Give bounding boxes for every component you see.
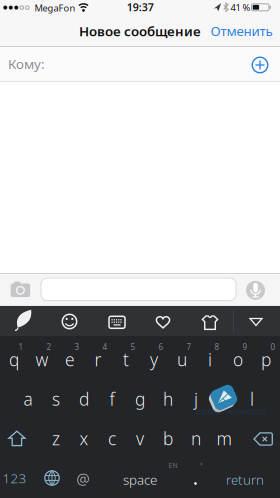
button[interactable]: y [140,340,168,379]
staticText: j [194,387,198,410]
staticText: h [163,387,173,410]
staticText: 4 [102,342,107,352]
staticText: q [9,348,19,371]
staticText: k [219,387,228,410]
button[interactable]: t [112,340,140,379]
staticText: o [233,348,243,371]
staticText: 41 % [231,1,251,14]
button[interactable]: s [42,379,70,418]
button[interactable] [242,307,270,335]
staticText: c [108,427,116,450]
staticText: 8 [214,342,219,352]
button[interactable] [248,420,278,458]
button[interactable]: Отменить [199,18,280,44]
button[interactable]: j [182,379,210,418]
button[interactable] [196,308,224,336]
staticText: space [123,471,157,488]
staticText: b [163,427,173,450]
staticText: l [250,387,254,410]
staticText: a [23,387,32,410]
button[interactable]: x [70,419,98,458]
button[interactable]: w [28,340,56,379]
staticText: p [261,348,271,371]
button[interactable]: return [219,460,271,498]
staticText: g [135,387,145,410]
staticText: w [35,348,48,371]
button[interactable] [183,468,207,498]
button[interactable] [41,278,236,301]
staticText: v [136,427,144,450]
staticText: 6 [158,342,163,352]
button[interactable]: o [224,340,252,379]
staticText: 2 [46,342,51,352]
button[interactable] [243,278,268,303]
staticText: 3 [74,342,79,352]
staticText: 123 [2,469,26,487]
button[interactable]: l [238,379,266,418]
staticText: Отменить [210,22,272,40]
staticText: 5 [130,342,135,352]
button[interactable] [55,307,83,335]
staticText: n [191,427,201,450]
staticText: z [52,427,60,450]
staticText: s [52,387,60,410]
button[interactable] [38,464,66,492]
button[interactable]: q [0,340,28,379]
staticText: d [79,387,89,410]
staticText: r [94,348,101,371]
button[interactable]: h [154,379,182,418]
button[interactable]: z [42,419,70,458]
button[interactable]: e [56,340,84,379]
button[interactable]: v [126,419,154,458]
staticText: x [79,427,88,450]
button[interactable] [103,308,131,336]
button[interactable]: a [14,379,42,418]
staticText: Новое сообщение [79,22,201,40]
staticText: y [150,348,158,371]
button[interactable]: c [98,419,126,458]
button[interactable] [149,308,177,336]
staticText: 9 [242,342,247,352]
button[interactable]: @ [69,459,97,498]
button[interactable]: g [126,379,154,418]
button[interactable]: i [196,340,224,379]
button[interactable]: 123 [0,458,29,497]
button[interactable]: f [98,379,126,418]
staticText: MegaFon [34,2,75,14]
staticText: mobile-review.com [196,406,266,417]
button[interactable]: space [110,460,170,498]
staticText: m [216,427,231,450]
staticText: e [65,348,75,371]
staticText: 19:37 [127,0,154,14]
button[interactable]: p [252,340,280,379]
staticText: f [109,387,114,410]
button[interactable]: b [154,419,182,458]
staticText: @ [76,469,89,489]
staticText: 0 [270,342,275,352]
button[interactable]: u [168,340,196,379]
button[interactable] [3,420,31,458]
button[interactable] [246,51,274,79]
button[interactable] [7,306,37,336]
button[interactable] [5,274,35,304]
button[interactable]: d [70,379,98,418]
button[interactable]: k [210,379,238,418]
staticText: Кому: [8,55,45,73]
button[interactable]: n [182,419,210,458]
button[interactable]: m [210,419,238,458]
staticText: u [177,348,187,371]
staticText: 1 [18,342,23,352]
staticText: return [226,471,264,488]
staticText: t [123,348,129,371]
staticText: i [208,348,212,371]
staticText: EN [168,461,177,470]
staticText: 7 [186,342,191,352]
button[interactable]: r [84,340,112,379]
